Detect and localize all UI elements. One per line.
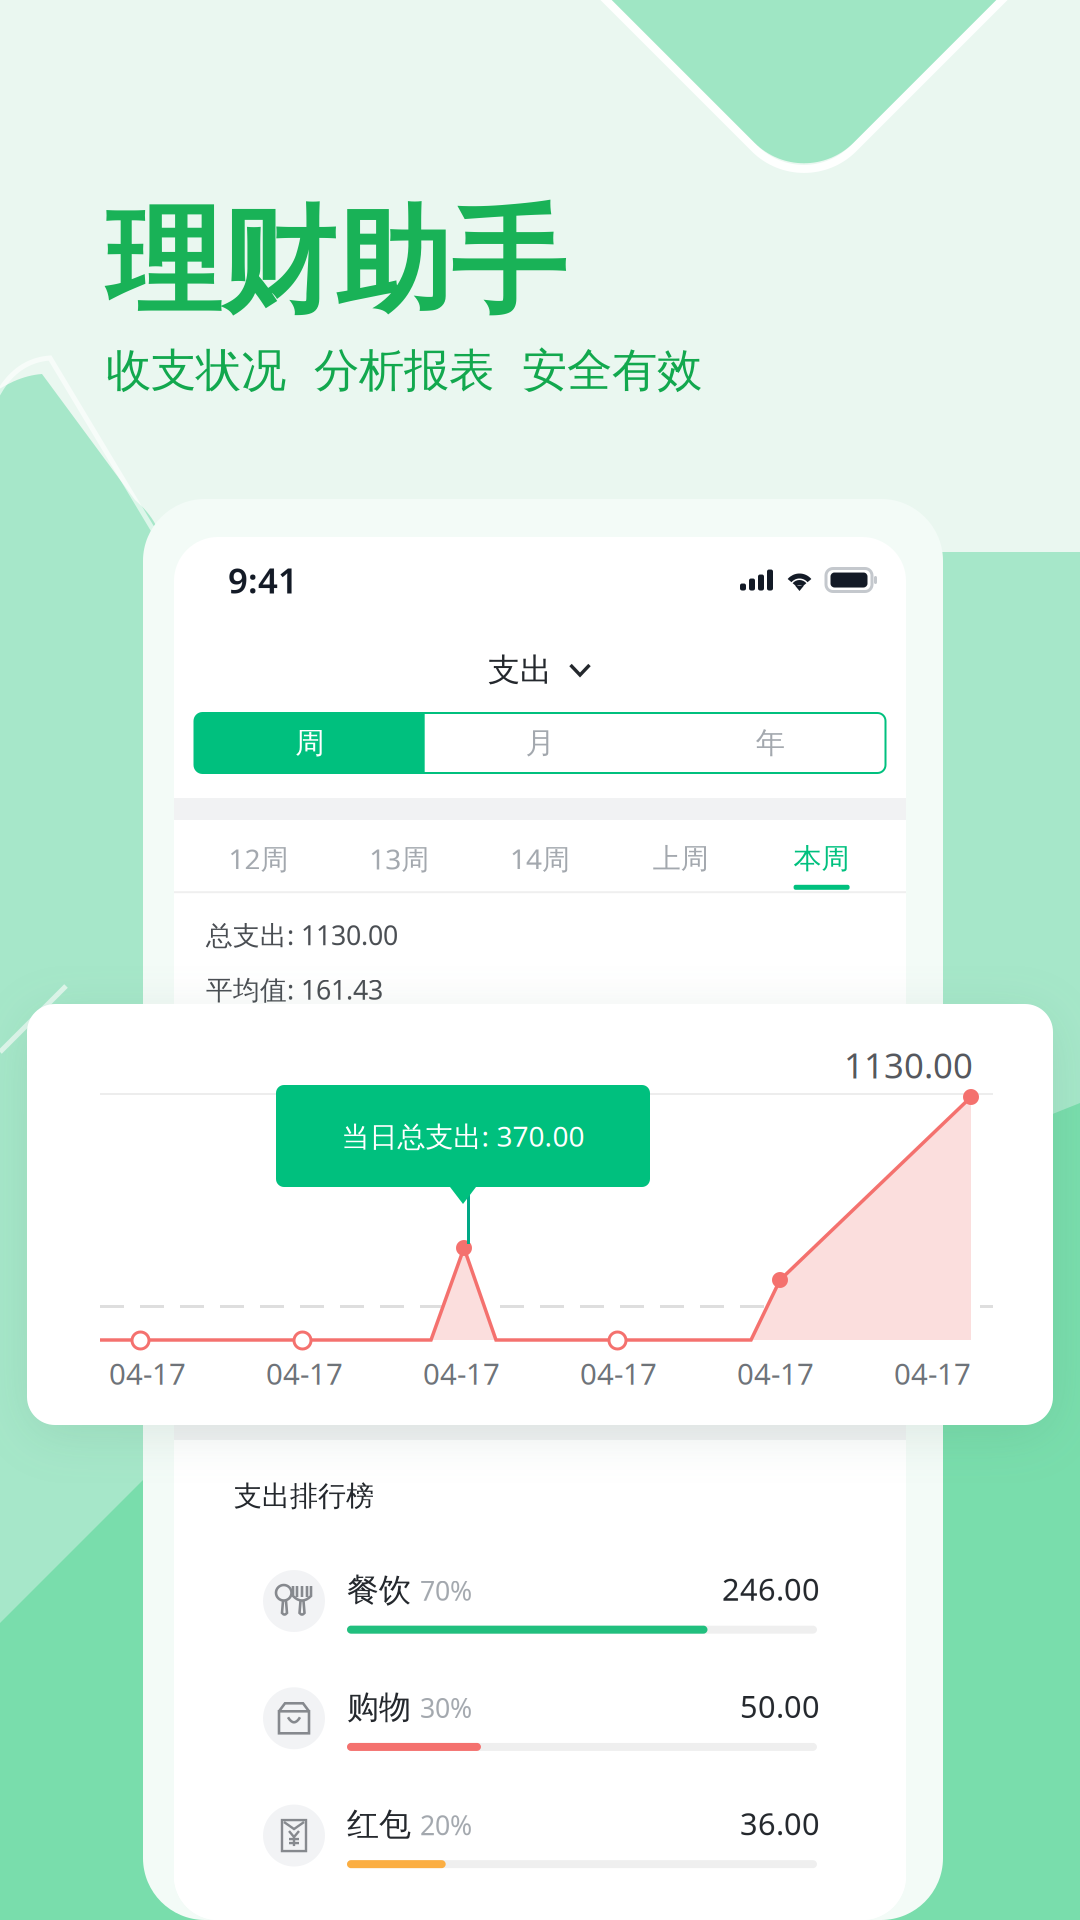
staticText: 收支状况 分析报表 安全有效 <box>106 343 702 398</box>
staticText: 04-17 <box>266 1354 343 1393</box>
staticText: 12周 <box>228 840 288 877</box>
button[interactable]: 12周 <box>188 840 329 891</box>
staticText: 04-17 <box>894 1354 971 1393</box>
staticText: 当日总支出: 370.00 <box>341 1117 584 1155</box>
staticText: 04-17 <box>737 1354 814 1393</box>
staticText: 理财助手 <box>106 192 566 333</box>
button[interactable]: 红包 <box>263 1803 820 1868</box>
staticText: 平均值: 161.43 <box>206 972 383 1007</box>
button[interactable]: 月 <box>425 713 655 773</box>
staticText: 9:41 <box>228 557 298 603</box>
button[interactable]: 13周 <box>329 840 470 891</box>
button[interactable]: 购物 <box>263 1686 820 1751</box>
staticText: 14周 <box>510 840 570 877</box>
staticText: 30% <box>420 1690 472 1725</box>
staticText: 50.00 <box>740 1686 820 1726</box>
button[interactable]: 14周 <box>470 840 610 891</box>
staticText: 支出 <box>488 650 552 690</box>
staticText: 04-17 <box>580 1354 657 1393</box>
button[interactable]: 本周 <box>751 841 892 890</box>
staticText: 20% <box>420 1807 472 1842</box>
staticText: 本周 <box>794 841 850 876</box>
button[interactable]: 年 <box>655 713 885 773</box>
staticText: 红包 <box>347 1805 411 1844</box>
button[interactable]: 周 <box>194 713 425 773</box>
staticText: 支出排行榜 <box>234 1479 374 1513</box>
staticText: 13周 <box>369 840 429 877</box>
staticText: 246.00 <box>722 1568 820 1609</box>
staticText: 月 <box>525 725 554 761</box>
staticText: 70% <box>420 1573 472 1608</box>
button[interactable]: 餐饮 <box>263 1568 820 1634</box>
staticText: 36.00 <box>740 1803 820 1844</box>
staticText: 餐饮 <box>347 1570 411 1610</box>
staticText: 年 <box>756 725 785 761</box>
staticText: 1130.00 <box>844 1042 973 1088</box>
staticText: 周 <box>295 725 324 761</box>
staticText: 购物 <box>347 1688 411 1727</box>
staticText: 总支出: 1130.00 <box>206 917 398 953</box>
button[interactable]: 上周 <box>610 841 751 890</box>
staticText: 上周 <box>653 841 709 876</box>
staticText: 04-17 <box>423 1354 500 1393</box>
staticText: 04-17 <box>109 1354 186 1393</box>
